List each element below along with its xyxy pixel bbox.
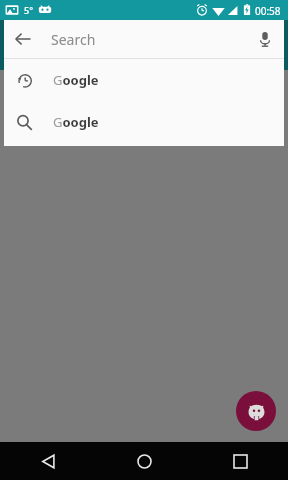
button[interactable]: Google: [4, 59, 284, 101]
staticText: 5°: [24, 4, 33, 16]
staticText: Google: [53, 71, 99, 89]
staticText: Search: [51, 30, 96, 49]
staticText: Google: [53, 113, 99, 131]
button[interactable]: Back: [0, 442, 96, 480]
button[interactable]: Home: [96, 442, 192, 480]
button[interactable]: Voice search: [246, 20, 284, 58]
button[interactable]: Google: [4, 101, 284, 143]
staticText: 00:58: [255, 4, 281, 18]
button[interactable]: Back: [4, 20, 284, 58]
button[interactable]: Recent apps: [192, 442, 288, 480]
button[interactable]: Back: [4, 20, 42, 58]
button[interactable]: GitHub: [236, 391, 276, 431]
